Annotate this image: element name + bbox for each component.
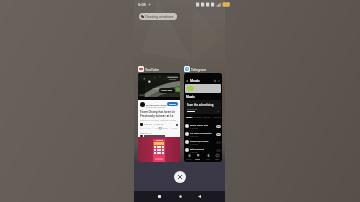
staticText: All Time Favourite <box>190 131 212 134</box>
button[interactable]: OPEN <box>187 111 195 112</box>
button[interactable]: Albums <box>212 116 221 120</box>
button[interactable]: Bittersweet Symphony <box>185 146 221 154</box>
staticText: Chats <box>195 158 201 161</box>
staticText: Previously winner at Le Mans · 2024, the… <box>140 114 178 118</box>
staticText: Floating windows <box>145 14 174 19</box>
staticText: Podcasts <box>194 116 203 119</box>
staticText: ↓ Save <box>170 127 178 130</box>
button[interactable]: Chats <box>194 154 202 161</box>
staticText: Music <box>186 95 195 99</box>
staticText: #Formula #Chang #Racing #2025 <box>140 119 177 122</box>
button[interactable]: Clear all <box>174 171 186 183</box>
button[interactable]: Calls <box>204 154 212 161</box>
button[interactable]: Home <box>185 154 193 161</box>
staticText: YouTube <box>145 67 159 72</box>
button[interactable] <box>216 141 221 144</box>
button[interactable]: Playlists <box>203 116 212 120</box>
staticText: 5:05 PM · 12 Jan 25 <box>144 123 164 126</box>
button[interactable]: Music <box>185 116 194 120</box>
staticText: Motorsport Week <box>146 103 167 106</box>
staticText: Follow <box>169 103 177 106</box>
staticText: Get <box>217 125 221 128</box>
staticText: Watch later <box>161 89 173 92</box>
button[interactable]: Ocean by Dawn <box>185 138 221 146</box>
staticText: @MotorsportWeek · 1h <box>146 106 167 109</box>
staticText: Team Chang has been in Formula E1 before… <box>140 110 178 114</box>
staticText: Playlists <box>203 116 212 119</box>
staticText: 2:45 min <box>190 127 199 130</box>
staticText: Music <box>186 116 193 119</box>
staticText: ◎ 21 <box>140 127 145 130</box>
button[interactable]: Road Away Mix <box>185 122 221 130</box>
staticText: Feed <box>215 158 220 161</box>
staticText: ⤴ Share <box>159 127 169 130</box>
button[interactable]: Recents <box>153 191 165 202</box>
staticText: 2:45 min <box>190 143 199 146</box>
staticText: 2:45 min <box>190 135 199 138</box>
staticText: Scan the advertising portals <box>187 103 219 107</box>
other: Back <box>186 80 188 82</box>
button[interactable]: All Time Favourite <box>185 130 221 138</box>
staticText: sponsored <box>187 108 198 111</box>
staticText: Replies (4) <box>140 131 152 134</box>
button[interactable]: Watch later <box>138 73 180 162</box>
button[interactable]: Podcasts <box>194 116 203 120</box>
staticText: Bittersweet Symphony <box>190 147 216 150</box>
staticText: Get <box>217 133 221 136</box>
button[interactable]: Feed <box>213 154 221 161</box>
button[interactable]: Watch later <box>159 88 175 93</box>
staticText: ↻ 87 <box>146 127 151 130</box>
staticText: Home <box>186 158 192 161</box>
staticText: Ocean by Dawn <box>190 139 209 142</box>
button[interactable]: Floating windows <box>139 13 177 20</box>
staticText: Music <box>190 78 200 83</box>
other: Search <box>214 80 216 82</box>
button[interactable]: Back <box>184 73 222 162</box>
button[interactable]: Scan the advertising portals <box>185 100 221 114</box>
button[interactable]: Follow <box>167 102 178 106</box>
button[interactable]: Back <box>193 191 205 202</box>
staticText: ♡ 1.2K <box>152 127 159 130</box>
staticText: 2:45 min <box>190 151 199 154</box>
staticText: 5:05 <box>138 2 146 7</box>
button[interactable]: Home <box>174 191 186 202</box>
button[interactable]: Get <box>216 125 221 128</box>
staticText: Albums <box>213 116 221 119</box>
staticText: Telegram <box>191 67 207 72</box>
button[interactable]: Get <box>216 133 221 136</box>
button[interactable] <box>185 84 221 93</box>
other: More <box>218 80 220 82</box>
staticText: Road Away Mix <box>190 123 209 126</box>
button[interactable] <box>216 149 221 152</box>
staticText: Calls <box>206 158 211 161</box>
